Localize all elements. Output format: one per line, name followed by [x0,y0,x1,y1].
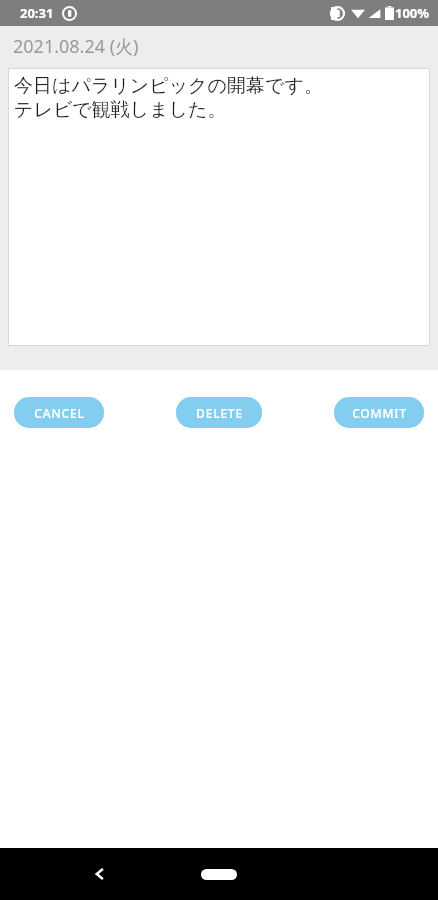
staticText: 2021.08.24 (火) [13,34,139,59]
staticText: CANCEL [34,405,85,421]
button[interactable]: DELETE [176,397,262,428]
button[interactable]: CANCEL [14,397,104,428]
button[interactable]: Back [78,852,122,896]
staticText: COMMIT [352,405,407,421]
staticText: DELETE [196,405,243,421]
staticText: 20:31 [20,4,54,22]
staticText: テレビで観戦しました。 [14,98,227,122]
staticText: 100% [395,4,430,22]
button[interactable]: 今日はパラリンピックの開幕です。 [8,68,430,346]
button[interactable]: Home [189,859,249,889]
staticText: 今日はパラリンピックの開幕です。 [14,74,323,98]
button[interactable]: COMMIT [334,397,424,428]
